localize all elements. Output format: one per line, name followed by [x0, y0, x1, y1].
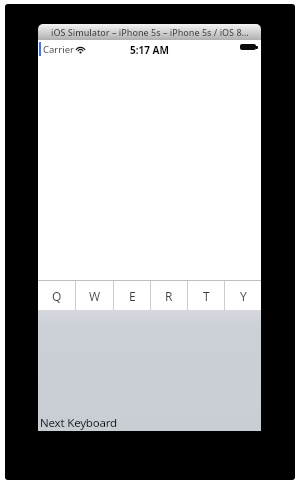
button[interactable]: E	[114, 281, 150, 310]
button[interactable]: Q	[38, 281, 75, 310]
staticText: Q	[52, 288, 62, 304]
staticText: T	[203, 288, 210, 304]
staticText: E	[129, 288, 136, 304]
staticText: R	[165, 288, 173, 304]
staticText: 5:17 AM	[130, 43, 169, 57]
staticText: W	[89, 288, 101, 304]
button[interactable]: Next Keyboard	[38, 415, 115, 431]
staticText: Carrier	[43, 43, 74, 56]
button[interactable]: T	[188, 281, 224, 310]
button[interactable]: W	[76, 281, 113, 310]
button[interactable]: Y	[225, 281, 261, 310]
staticText: Next Keyboard	[40, 415, 117, 431]
button[interactable]: R	[151, 281, 187, 310]
staticText: Y	[240, 288, 247, 304]
staticText: iOS Simulator – iPhone 5s – iPhone 5s / …	[51, 26, 249, 38]
